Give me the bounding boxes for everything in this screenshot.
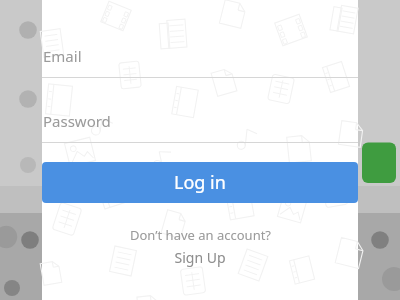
staticText: Log in [174, 170, 226, 195]
staticText: Don’t have an account? [130, 226, 271, 244]
staticText: Sign Up [174, 248, 226, 267]
staticText: Password [43, 111, 111, 131]
button[interactable]: Sign Up [166, 247, 234, 268]
staticText: Email [43, 46, 82, 66]
button[interactable]: Log in [42, 162, 358, 203]
button[interactable]: Email [42, 42, 358, 78]
button[interactable]: Password [42, 107, 358, 143]
